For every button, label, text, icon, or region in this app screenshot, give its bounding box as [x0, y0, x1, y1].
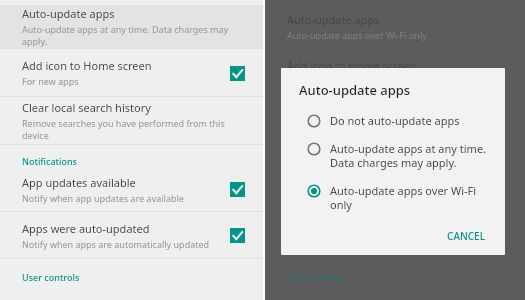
button[interactable]: Auto-update apps at any time. Data charg… [307, 136, 493, 175]
staticText: Apps were auto-updated [22, 221, 150, 236]
staticText: For new apps [22, 75, 79, 87]
button[interactable]: Add icon to Home screen [265, 49, 525, 96]
staticText: Auto-update apps [287, 12, 380, 27]
button[interactable]: Toggle App updates available [225, 177, 249, 201]
staticText: Add icon to Home screen [287, 58, 417, 73]
button[interactable]: Do not auto-update apps [307, 108, 493, 133]
staticText: Notifications [22, 155, 77, 167]
staticText: Auto-update apps at any time. Data charg… [22, 23, 249, 47]
button[interactable]: Auto-update apps [265, 5, 525, 48]
button[interactable]: CANCEL [439, 225, 493, 247]
staticText: Auto-update apps [22, 6, 115, 21]
button[interactable]: Apps were auto-updated [265, 212, 525, 258]
button[interactable]: Clear local search history [0, 97, 263, 144]
button[interactable]: App updates available [265, 167, 525, 211]
button[interactable]: Auto-update apps over Wi-Fi only [307, 178, 493, 217]
staticText: Notify when app updates are available [22, 192, 184, 204]
staticText: Notify when apps are automatically updat… [22, 238, 210, 250]
staticText: Notifications [287, 155, 342, 167]
button[interactable]: Apps were auto-updated [0, 212, 263, 258]
staticText: Auto-update apps at any time. Data charg… [330, 141, 487, 170]
button[interactable]: Add icon to Home screen [0, 49, 263, 96]
button[interactable]: Auto-update apps [0, 5, 263, 48]
staticText: Auto-update apps over Wi-Fi only [287, 29, 427, 41]
staticText: Add icon to Home screen [22, 58, 152, 73]
button[interactable]: Toggle Add icon to Home screen [225, 61, 249, 85]
staticText: Remove searches you have performed from … [22, 117, 249, 141]
staticText: Auto-update apps [299, 81, 411, 99]
staticText: User controls [287, 271, 345, 283]
staticText: App updates available [22, 175, 136, 190]
staticText: For new apps [287, 75, 344, 87]
button[interactable]: Clear local search history [265, 97, 525, 144]
staticText: App updates available [287, 175, 401, 190]
staticText: Do not auto-update apps [330, 113, 460, 128]
staticText: Notify when app updates are available [287, 192, 449, 204]
staticText: User controls [22, 271, 80, 283]
button[interactable]: App updates available [0, 167, 263, 211]
button[interactable]: Toggle Apps were auto-updated [225, 223, 249, 247]
staticText: Notify when apps are automatically updat… [287, 238, 475, 250]
staticText: CANCEL [447, 229, 485, 243]
staticText: Remove searches you have performed from … [287, 117, 511, 141]
staticText: Clear local search history [22, 100, 151, 115]
staticText: Auto-update apps over Wi-Fi only [330, 183, 477, 212]
